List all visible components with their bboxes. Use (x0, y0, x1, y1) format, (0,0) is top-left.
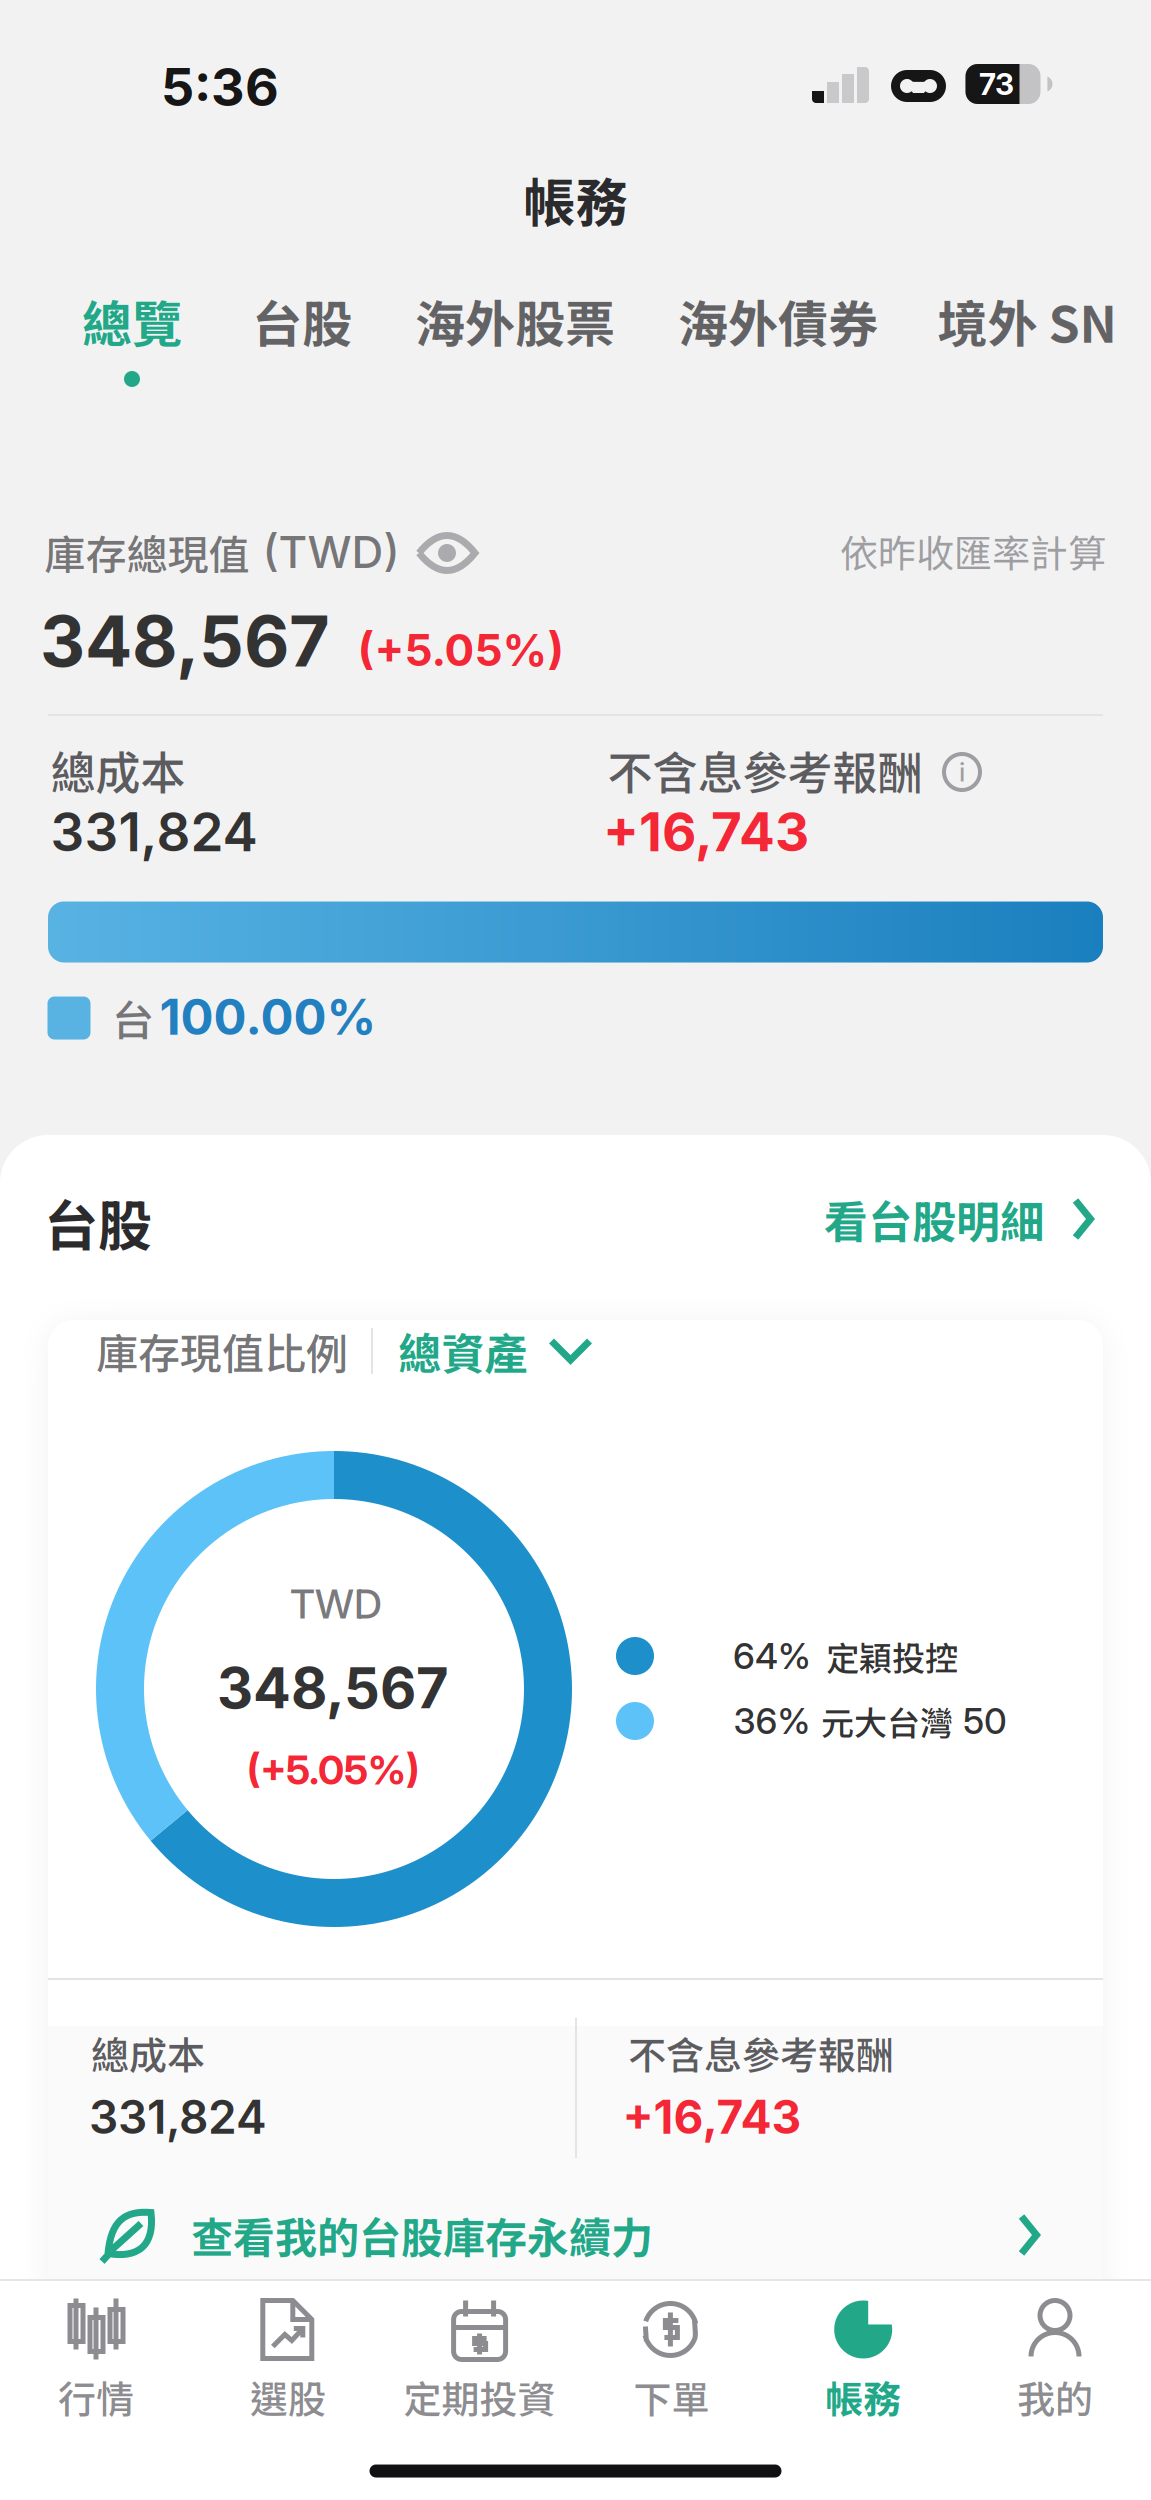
staticText: 5:36 (161, 55, 279, 118)
staticText: 台 (112, 988, 154, 1048)
staticText: 境外 SN (937, 285, 1116, 357)
button[interactable]: 總資產 (398, 1320, 593, 1382)
staticText: 下單 (633, 2369, 709, 2424)
button[interactable]: 海外股票 (415, 284, 615, 400)
button[interactable]: 下單 (575, 2281, 767, 2431)
button[interactable]: 海外債券 (678, 284, 878, 400)
staticText: 73 (979, 66, 1014, 102)
staticText: +16,743 (622, 2089, 801, 2145)
staticText: 總成本 (91, 2025, 205, 2080)
staticText: 64% (733, 1634, 811, 1678)
staticText: 331,824 (89, 2089, 267, 2145)
staticText: 查看我的台股庫存永續力 (191, 2205, 653, 2265)
staticText: 定穎投控 (826, 1632, 958, 1680)
staticText: 36% (733, 1699, 810, 1743)
staticText: 帳務 (825, 2369, 901, 2424)
staticText: 選股 (250, 2369, 326, 2424)
button[interactable]: 查看我的台股庫存永續力 (97, 2180, 1104, 2290)
staticText: 海外債券 (678, 285, 878, 357)
staticText: 行情 (58, 2369, 134, 2424)
staticText: 庫存總現值 (44, 522, 249, 582)
staticText: 台股 (252, 285, 352, 357)
button[interactable]: 台股 (252, 284, 352, 400)
staticText: (+5.05%) (247, 1746, 419, 1794)
button[interactable]: 看台股明細 (824, 1187, 1094, 1251)
staticText: 總覽 (82, 285, 182, 357)
staticText: 看台股明細 (824, 1187, 1044, 1251)
button[interactable]: 我的 (959, 2281, 1151, 2431)
staticText: (+5.05%) (357, 623, 564, 677)
staticText: 元大台灣 (821, 1697, 953, 1745)
staticText: (TWD) (262, 525, 399, 579)
staticText: TWD (290, 1580, 382, 1628)
staticText: 海外股票 (415, 285, 615, 357)
staticText: 331,824 (50, 800, 257, 864)
button[interactable]: 定期投資 (384, 2281, 575, 2431)
button[interactable]: 選股 (192, 2281, 384, 2431)
button[interactable]: 總覽 (82, 284, 182, 400)
staticText: +16,743 (603, 800, 809, 864)
staticText: 不含息參考報酬 (607, 737, 922, 803)
staticText: 帳務 (523, 161, 627, 237)
staticText: 100.00% (159, 987, 376, 1047)
staticText: 348,567 (40, 599, 330, 683)
staticText: 我的 (1017, 2369, 1093, 2424)
staticText: 總成本 (50, 737, 185, 803)
staticText: 定期投資 (404, 2369, 556, 2424)
staticText: 庫存現值比例 (96, 1321, 348, 1381)
button[interactable]: 行情 (0, 2281, 192, 2431)
staticText: 台股 (44, 1183, 152, 1261)
staticText: 依昨收匯率計算 (840, 523, 1106, 578)
staticText: 不含息參考報酬 (628, 2025, 894, 2080)
button[interactable]: 隱藏金額 (415, 530, 479, 576)
button[interactable]: 帳務 (767, 2281, 959, 2431)
staticText: 總資產 (398, 1320, 527, 1382)
button[interactable]: 境外 SN (937, 284, 1116, 400)
staticText: i (959, 756, 965, 788)
staticText: 348,567 (217, 1654, 449, 1722)
staticText: 50 (963, 1699, 1007, 1743)
